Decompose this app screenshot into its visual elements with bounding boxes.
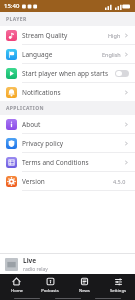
button[interactable]: Start player when app starts xyxy=(0,64,135,82)
staticText: About xyxy=(22,120,124,129)
button[interactable]: Version xyxy=(0,172,135,190)
button[interactable]: Privacy policy xyxy=(0,134,135,152)
button[interactable]: About xyxy=(0,115,135,133)
button[interactable]: Live xyxy=(0,254,135,274)
staticText: Start player when app starts xyxy=(22,69,115,78)
button[interactable]: Settings xyxy=(101,274,135,296)
staticText: 4.5.0 xyxy=(113,178,126,185)
staticText: APPLICATION xyxy=(6,105,44,112)
staticText: radio relay xyxy=(23,266,48,273)
staticText: Settings xyxy=(110,288,126,294)
staticText: Home xyxy=(11,288,23,294)
button[interactable]: Home xyxy=(0,274,33,296)
staticText: Notifications xyxy=(22,88,124,97)
staticText: Language xyxy=(22,50,102,59)
button[interactable] xyxy=(115,70,129,77)
staticText: Podcasts xyxy=(41,288,59,294)
staticText: 15:40 xyxy=(4,2,20,10)
staticText: Stream Quality xyxy=(22,31,108,40)
staticText: Privacy policy xyxy=(22,139,124,148)
staticText: English xyxy=(102,51,121,58)
staticText: High xyxy=(108,32,121,39)
staticText: Terms and Conditions xyxy=(22,158,124,167)
staticText: Version xyxy=(22,177,113,186)
button[interactable]: Terms and Conditions xyxy=(0,153,135,171)
button[interactable]: Stream Quality xyxy=(0,26,135,44)
staticText: Live xyxy=(23,256,37,265)
button[interactable]: Podcasts xyxy=(33,274,67,296)
button[interactable]: Notifications xyxy=(0,83,135,101)
staticText: News xyxy=(79,288,90,294)
staticText: PLAYER xyxy=(6,16,27,23)
button[interactable]: News xyxy=(67,274,101,296)
button[interactable]: Language xyxy=(0,45,135,63)
